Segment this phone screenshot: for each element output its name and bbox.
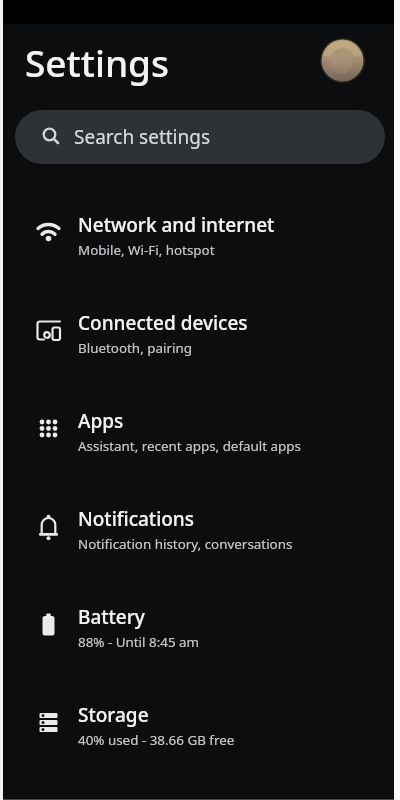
button[interactable]: Search settings [15, 110, 385, 164]
button[interactable]: Notifications [0, 480, 400, 578]
staticText: Connected devices [78, 310, 248, 336]
button[interactable]: Storage [0, 676, 400, 774]
staticText: 88% - Until 8:45 am [78, 633, 200, 651]
staticText: 40% used - 38.66 GB free [78, 731, 235, 749]
staticText: Mobile, Wi-Fi, hotspot [78, 241, 215, 259]
staticText: Settings [25, 37, 170, 87]
staticText: Notifications [78, 506, 195, 532]
staticText: Network and internet [78, 212, 275, 238]
staticText: Notification history, conversations [78, 535, 293, 553]
staticText: Apps [78, 408, 124, 434]
staticText: Battery [78, 604, 145, 630]
staticText: Search settings [74, 124, 211, 150]
button[interactable]: Battery [0, 578, 400, 676]
button[interactable] [320, 38, 365, 83]
button[interactable]: Connected devices [0, 284, 400, 382]
button[interactable]: Network and internet [0, 186, 400, 284]
staticText: Bluetooth, pairing [78, 339, 192, 357]
staticText: Storage [78, 702, 149, 728]
button[interactable]: Apps [0, 382, 400, 480]
staticText: Assistant, recent apps, default apps [78, 437, 301, 455]
